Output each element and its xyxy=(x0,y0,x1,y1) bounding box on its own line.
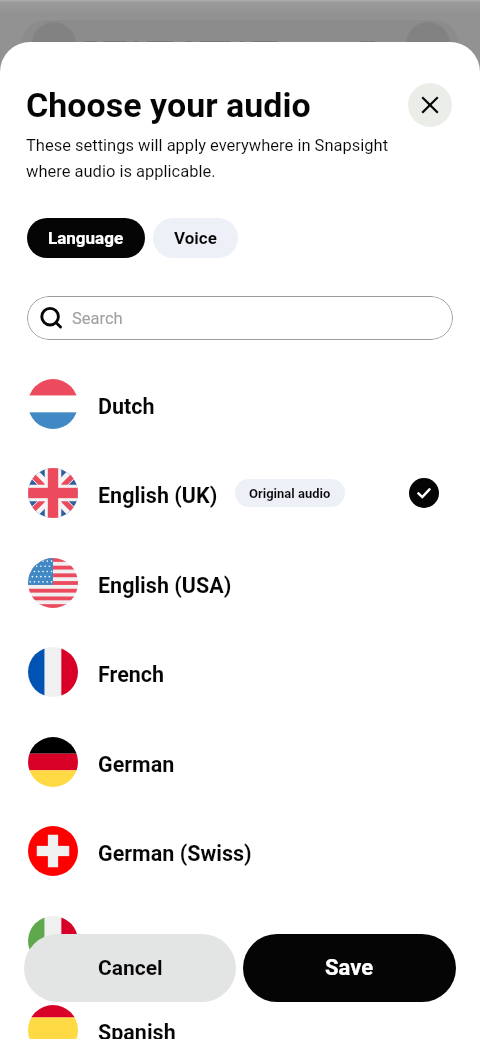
button[interactable]: German xyxy=(0,737,480,787)
button[interactable]: Close dialog xyxy=(408,83,452,127)
staticText: Italian xyxy=(98,931,159,956)
staticText: These settings will apply everywhere in … xyxy=(26,136,389,181)
button[interactable]: German (Swiss) xyxy=(0,826,480,876)
staticText: Voice xyxy=(174,228,217,248)
button[interactable]: Search xyxy=(27,296,453,340)
staticText: Language xyxy=(48,228,124,248)
button[interactable]: Dutch xyxy=(0,379,480,429)
staticText: German xyxy=(98,752,175,777)
staticText: Choose your audio xyxy=(26,85,311,125)
button[interactable]: Spanish xyxy=(0,1005,480,1039)
button[interactable]: Italian xyxy=(0,916,480,966)
button[interactable]: Language xyxy=(27,218,145,258)
button[interactable]: Voice xyxy=(153,218,238,258)
staticText: French xyxy=(98,662,165,687)
staticText: Dutch xyxy=(98,394,155,419)
staticText: Search xyxy=(72,309,123,328)
staticText: Cancel xyxy=(98,956,163,981)
button[interactable]: Save xyxy=(243,934,456,1002)
staticText: English (UK) xyxy=(98,483,218,508)
button[interactable]: English (USA) xyxy=(0,558,480,608)
staticText: Save xyxy=(325,955,374,981)
button[interactable]: French xyxy=(0,647,480,697)
staticText: Spanish xyxy=(98,1020,176,1039)
staticText: English (USA) xyxy=(98,573,232,598)
button[interactable]: Cancel xyxy=(24,934,236,1002)
button[interactable]: English (UK) xyxy=(0,468,480,518)
staticText: German (Swiss) xyxy=(98,841,252,866)
staticText: Original audio xyxy=(249,486,331,501)
